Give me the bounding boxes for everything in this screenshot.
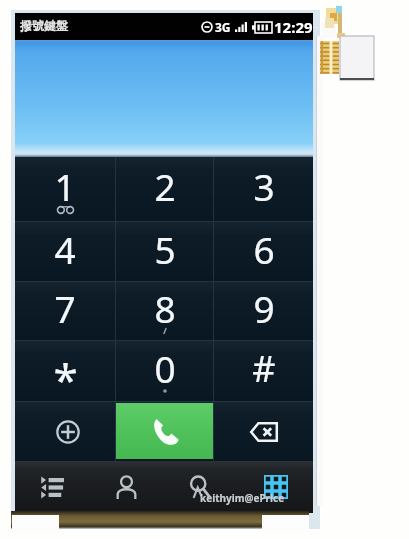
button[interactable]: 8 [116,282,213,340]
button[interactable]: 7 [15,282,115,340]
staticText: 12:29 [274,17,313,37]
button[interactable]: Backspace [214,402,313,461]
button[interactable]: # [214,341,313,401]
staticText: keithyim@ePrice [200,491,285,505]
staticText: 4 [54,224,76,274]
staticText: 1 [54,161,76,211]
button[interactable]: 6 [214,222,313,281]
button[interactable]: Call log [15,461,89,513]
staticText: 8 [154,283,176,333]
button[interactable]: 2 [116,157,213,221]
button[interactable]: 4 [15,222,115,281]
staticText: 3 [253,161,275,211]
staticText: 3G [215,19,231,35]
button[interactable]: * [15,341,115,401]
button[interactable]: 3 [214,157,313,221]
staticText: 0 [154,343,176,393]
staticText: 5 [154,224,176,274]
button[interactable]: Call [116,403,213,459]
staticText: 2 [154,161,176,211]
button[interactable]: Add contact [15,402,115,461]
staticText: 撥號鍵盤 [20,18,68,33]
staticText: 6 [253,224,275,274]
button[interactable]: 5 [116,222,213,281]
button[interactable]: 1 [15,157,115,221]
staticText: 9 [253,283,275,333]
staticText: # [252,344,276,393]
button[interactable]: Contacts [89,461,163,513]
button[interactable]: Dial pad [238,461,313,513]
staticText: 7 [54,283,76,333]
button[interactable]: 0 [116,341,213,401]
button[interactable]: Search contacts [163,461,238,513]
button[interactable]: Phone number field [15,40,313,157]
staticText: * [53,349,78,409]
button[interactable]: 9 [214,282,313,340]
